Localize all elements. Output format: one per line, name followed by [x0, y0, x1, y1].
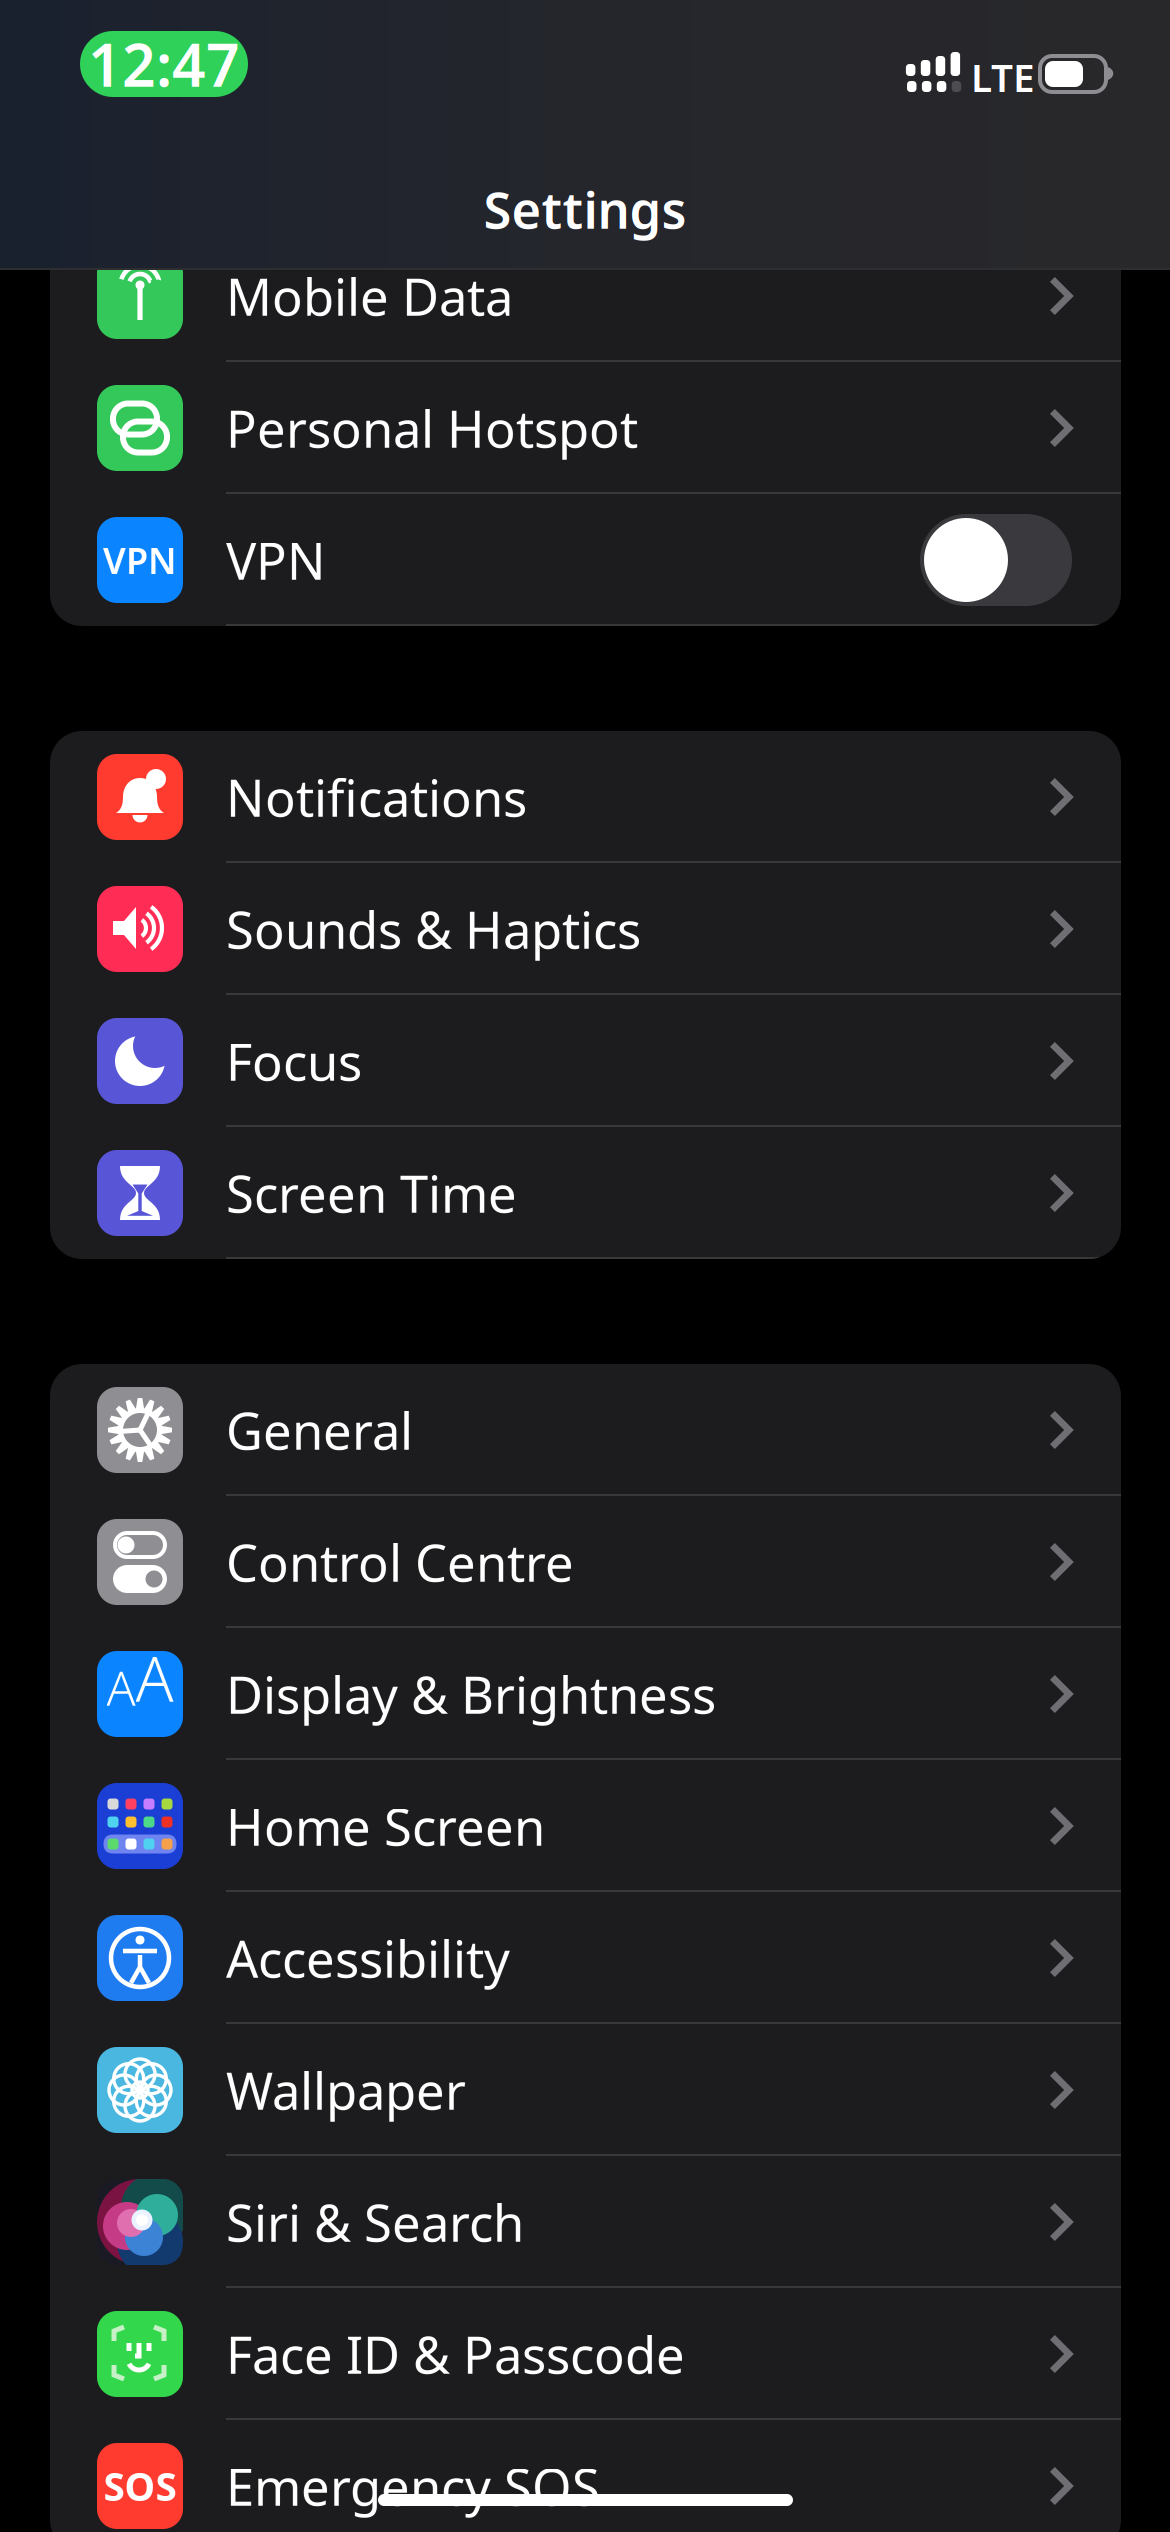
button[interactable]: Home Screen: [50, 1760, 1121, 1892]
button[interactable]: Face ID & Passcode: [50, 2288, 1121, 2420]
staticText: General: [226, 1396, 413, 1464]
button[interactable]: Siri & Search: [50, 2156, 1121, 2288]
staticText: Focus: [226, 1027, 362, 1095]
staticText: Mobile Data: [226, 262, 513, 330]
button[interactable]: SOS: [50, 2420, 1121, 2532]
staticText: LTE: [971, 51, 1035, 103]
button[interactable]: Sounds & Haptics: [50, 863, 1121, 995]
staticText: A: [135, 1636, 173, 1719]
button[interactable]: VPN: [50, 494, 1121, 626]
button[interactable]: Personal Hotspot: [50, 362, 1121, 494]
staticText: Face ID & Passcode: [226, 2320, 685, 2388]
button[interactable]: Screen Time: [50, 1127, 1121, 1259]
staticText: Screen Time: [226, 1159, 517, 1227]
button[interactable]: Focus: [50, 995, 1121, 1127]
button[interactable]: Control Centre: [50, 1496, 1121, 1628]
button[interactable]: Wallpaper: [50, 2024, 1121, 2156]
staticText: VPN: [103, 536, 177, 584]
staticText: Home Screen: [226, 1792, 545, 1860]
staticText: VPN: [226, 526, 326, 594]
button[interactable]: Mobile Data: [50, 230, 1121, 362]
staticText: Notifications: [226, 763, 527, 831]
staticText: Accessibility: [226, 1924, 510, 1992]
staticText: A: [106, 1655, 135, 1719]
staticText: Personal Hotspot: [226, 394, 638, 462]
staticText: Control Centre: [226, 1528, 574, 1596]
button[interactable]: Accessibility: [50, 1892, 1121, 2024]
staticText: Emergency SOS: [226, 2452, 600, 2520]
staticText: Settings: [483, 175, 686, 243]
staticText: SOS: [103, 2460, 176, 2512]
button[interactable]: General: [50, 1364, 1121, 1496]
staticText: Siri & Search: [226, 2188, 524, 2256]
staticText: Display & Brightness: [226, 1660, 716, 1728]
staticText: 12:47: [88, 25, 240, 103]
staticText: Wallpaper: [226, 2056, 466, 2124]
staticText: Sounds & Haptics: [226, 895, 641, 963]
button[interactable]: Notifications: [50, 731, 1121, 863]
button[interactable]: A: [50, 1628, 1121, 1760]
